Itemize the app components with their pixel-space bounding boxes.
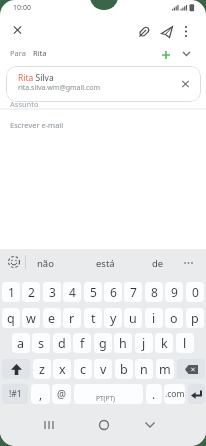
button[interactable] xyxy=(159,24,175,40)
staticText: Escrever e-mail xyxy=(10,120,64,130)
button[interactable]: h xyxy=(114,333,132,353)
staticText: de xyxy=(152,257,164,270)
staticText: Rita Silva xyxy=(18,72,54,84)
staticText: u xyxy=(129,310,137,327)
button[interactable]: q xyxy=(2,308,20,328)
staticText: 0 xyxy=(192,284,199,300)
button[interactable] xyxy=(158,47,174,63)
button[interactable]: u xyxy=(124,308,142,328)
button[interactable]: 8 xyxy=(145,282,163,302)
button[interactable]: s xyxy=(32,333,50,353)
button[interactable]: PT(PT) xyxy=(74,384,143,404)
button[interactable]: j xyxy=(135,333,153,353)
button[interactable]: de xyxy=(146,257,170,270)
button[interactable]: 6 xyxy=(104,282,122,302)
button[interactable]: , xyxy=(31,384,50,404)
button[interactable]: e xyxy=(43,308,61,328)
staticText: v xyxy=(100,361,107,378)
staticText: k xyxy=(161,335,168,352)
staticText: x xyxy=(59,361,66,378)
button[interactable]: 9 xyxy=(165,282,183,302)
staticText: b xyxy=(120,361,128,378)
button[interactable]: a xyxy=(12,333,30,353)
button[interactable]: 0 xyxy=(186,282,204,302)
button[interactable] xyxy=(10,24,26,38)
button[interactable]: Rita Silva xyxy=(6,66,201,102)
button[interactable]: c xyxy=(74,359,92,379)
staticText: 10:00 xyxy=(13,3,31,13)
button[interactable]: 2 xyxy=(22,282,40,302)
button[interactable]: b xyxy=(115,359,133,379)
staticText: Rita xyxy=(33,48,47,58)
staticText: c xyxy=(80,361,87,378)
staticText: i xyxy=(152,310,156,327)
staticText: 1 xyxy=(8,284,15,300)
staticText: .com xyxy=(165,388,185,400)
staticText: 4 xyxy=(69,284,76,300)
button[interactable]: 1 xyxy=(2,282,20,302)
button[interactable] xyxy=(178,47,194,63)
button[interactable]: n xyxy=(135,359,153,379)
button[interactable] xyxy=(2,359,30,379)
staticText: 9 xyxy=(171,284,178,300)
button[interactable]: @ xyxy=(52,384,71,404)
staticText: n xyxy=(140,361,148,378)
button[interactable]: i xyxy=(145,308,163,328)
staticText: . xyxy=(152,386,156,402)
staticText: e xyxy=(48,310,56,327)
button[interactable]: 4 xyxy=(63,282,81,302)
staticText: r xyxy=(69,310,75,327)
button[interactable]: z xyxy=(33,359,51,379)
button[interactable]: m xyxy=(156,359,174,379)
button[interactable]: o xyxy=(165,308,183,328)
button[interactable]: x xyxy=(53,359,71,379)
button[interactable]: r xyxy=(63,308,81,328)
button[interactable] xyxy=(178,24,194,40)
staticText: o xyxy=(170,310,178,327)
button[interactable] xyxy=(137,417,163,433)
staticText: rita.silva.wm@gmail.com xyxy=(18,83,101,93)
staticText: t xyxy=(91,310,96,327)
staticText: y xyxy=(110,310,117,327)
button[interactable] xyxy=(188,384,205,404)
staticText: , xyxy=(39,386,43,402)
staticText: 5 xyxy=(90,284,97,300)
staticText: 6 xyxy=(110,284,117,300)
staticText: f xyxy=(80,335,85,352)
button[interactable]: está xyxy=(93,257,117,270)
button[interactable]: g xyxy=(94,333,112,353)
button[interactable]: p xyxy=(186,308,204,328)
button[interactable] xyxy=(36,417,62,433)
staticText: PT(PT) xyxy=(96,394,115,403)
button[interactable]: l xyxy=(176,333,194,353)
button[interactable]: 5 xyxy=(84,282,102,302)
staticText: w xyxy=(26,310,36,327)
staticText: a xyxy=(17,335,25,352)
staticText: h xyxy=(119,335,127,352)
staticText: Para xyxy=(10,48,26,58)
staticText: p xyxy=(191,310,199,327)
button[interactable]: d xyxy=(53,333,71,353)
staticText: g xyxy=(99,335,107,352)
button[interactable]: . xyxy=(146,384,162,404)
button[interactable]: não xyxy=(33,257,57,270)
button[interactable]: 7 xyxy=(124,282,142,302)
button[interactable]: v xyxy=(94,359,112,379)
staticText: @ xyxy=(57,387,66,401)
button[interactable] xyxy=(136,24,152,40)
button[interactable]: w xyxy=(22,308,40,328)
staticText: 7 xyxy=(130,284,137,300)
staticText: não xyxy=(37,257,54,270)
button[interactable]: t xyxy=(84,308,102,328)
button[interactable]: y xyxy=(104,308,122,328)
button[interactable]: 3 xyxy=(43,282,61,302)
button[interactable]: .com xyxy=(164,384,185,404)
button[interactable] xyxy=(177,359,205,379)
button[interactable]: !#1 xyxy=(2,384,28,404)
staticText: 3 xyxy=(49,284,56,300)
staticText: q xyxy=(7,310,15,327)
button[interactable] xyxy=(91,417,117,433)
button[interactable]: f xyxy=(73,333,91,353)
staticText: !#1 xyxy=(9,388,22,400)
button[interactable]: k xyxy=(155,333,173,353)
